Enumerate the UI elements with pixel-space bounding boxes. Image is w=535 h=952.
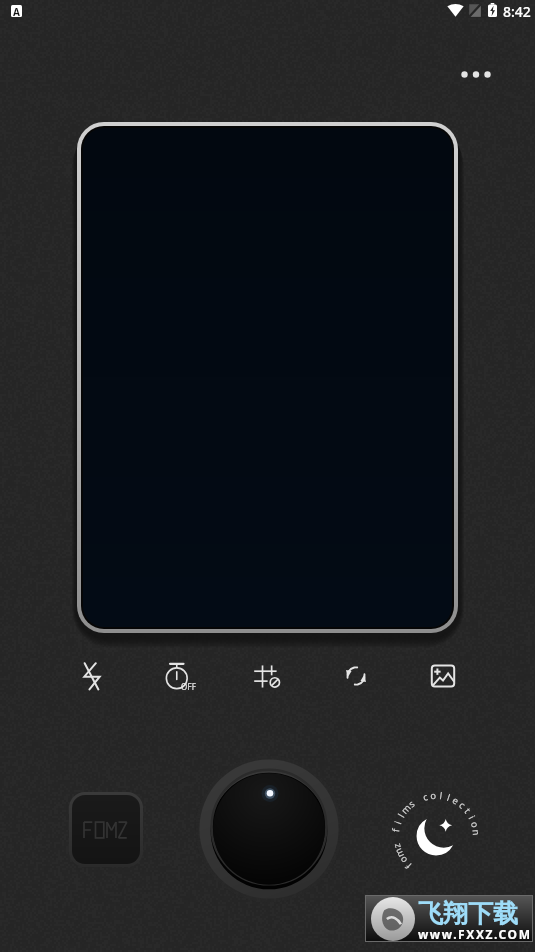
staticText: OFF xyxy=(181,681,197,692)
staticText: 8:42 xyxy=(503,2,531,21)
button[interactable] xyxy=(83,128,452,627)
staticText: A xyxy=(13,5,20,17)
staticText: 飞翔下载 xyxy=(418,898,518,929)
button[interactable]: Switch camera xyxy=(330,650,382,702)
button[interactable]: Grid off xyxy=(241,650,293,702)
button[interactable]: Timer off xyxy=(153,650,205,702)
button[interactable]: Flash off xyxy=(66,650,118,702)
staticText: www.FXXZ.COM xyxy=(418,926,532,942)
button[interactable]: FOMZ film xyxy=(72,795,140,864)
button[interactable]: More options xyxy=(452,55,500,92)
button[interactable]: Add photo xyxy=(417,650,469,702)
button[interactable]: fomz films collection xyxy=(382,780,490,888)
button[interactable]: Shutter xyxy=(195,755,343,903)
